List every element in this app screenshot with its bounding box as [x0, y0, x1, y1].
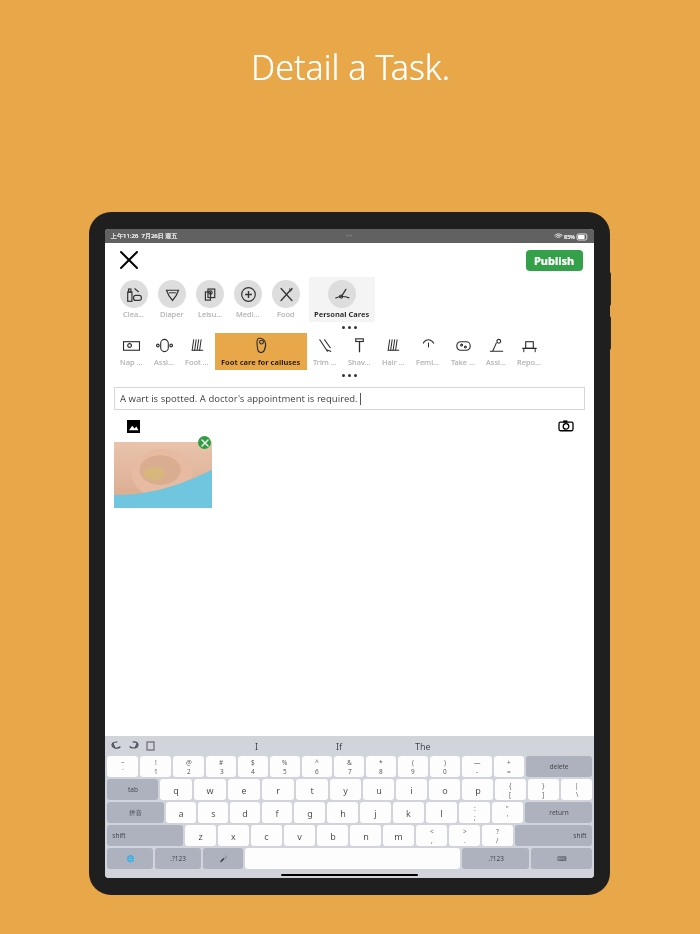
button[interactable]: b — [317, 825, 348, 846]
button[interactable]: : — [459, 802, 490, 823]
button[interactable]: Assi… — [149, 333, 179, 370]
button[interactable]: d — [230, 802, 260, 823]
button[interactable]: + — [494, 756, 524, 777]
button[interactable]: The — [381, 740, 464, 752]
button[interactable]: v — [284, 825, 315, 846]
button[interactable]: $ — [238, 756, 268, 777]
staticText: 4 — [251, 767, 255, 776]
staticText: l — [440, 807, 443, 819]
button[interactable]: Nap … — [115, 333, 148, 370]
staticText: m — [394, 830, 403, 842]
button[interactable]: Foot care for calluses — [215, 333, 307, 370]
staticText: Medi… — [236, 309, 260, 319]
button[interactable]: k — [393, 802, 424, 823]
button[interactable]: Personal Cares — [309, 277, 375, 322]
button[interactable]: Paste — [145, 740, 156, 751]
button[interactable]: % — [270, 756, 300, 777]
button[interactable]: ~ — [107, 756, 138, 777]
button[interactable]: shift — [515, 825, 592, 846]
button[interactable]: Remove photo — [198, 436, 211, 449]
button[interactable]: ^ — [302, 756, 332, 777]
button[interactable]: y — [330, 779, 361, 800]
button[interactable]: ! — [140, 756, 171, 777]
staticText: Personal Cares — [314, 309, 370, 319]
button[interactable]: Trim … — [308, 333, 342, 370]
button[interactable]: c — [251, 825, 282, 846]
button[interactable]: Take … — [446, 333, 480, 370]
button[interactable]: 🎤 — [203, 848, 243, 869]
staticText: 6 — [315, 767, 319, 776]
button[interactable]: & — [334, 756, 364, 777]
staticText: 上午11:26 7月26日 週五 — [111, 232, 178, 240]
staticText: o — [442, 784, 448, 796]
button[interactable]: ) — [430, 756, 460, 777]
button[interactable]: m — [383, 825, 414, 846]
button[interactable]: s — [198, 802, 228, 823]
button[interactable]: w — [194, 779, 226, 800]
button[interactable]: I — [215, 740, 298, 752]
button[interactable]: .?123 — [462, 848, 529, 869]
button[interactable]: Undo — [111, 740, 122, 751]
button[interactable]: e — [228, 779, 260, 800]
button[interactable]: .?123 — [155, 848, 201, 869]
button[interactable]: * — [366, 756, 396, 777]
button[interactable]: h — [327, 802, 358, 823]
button[interactable]: f — [262, 802, 292, 823]
button[interactable]: Femi… — [411, 333, 445, 370]
button[interactable]: } — [528, 779, 559, 800]
button[interactable]: x — [218, 825, 249, 846]
button[interactable]: Choose photo — [124, 417, 142, 435]
button[interactable]: Food — [268, 277, 304, 322]
button[interactable]: # — [206, 756, 236, 777]
button[interactable]: Take photo — [557, 417, 575, 435]
button[interactable]: Redo — [128, 740, 139, 751]
button[interactable]: 🌐 — [107, 848, 153, 869]
button[interactable]: > — [449, 825, 480, 846]
button[interactable]: — — [462, 756, 492, 777]
button[interactable]: If — [298, 740, 381, 752]
button[interactable]: Shav… — [343, 333, 376, 370]
button[interactable]: return — [525, 802, 592, 823]
button[interactable]: j — [360, 802, 391, 823]
button[interactable]: Clea… — [116, 277, 152, 322]
button[interactable]: i — [396, 779, 427, 800]
button[interactable]: a — [166, 802, 196, 823]
button[interactable]: o — [429, 779, 460, 800]
button[interactable]: n — [350, 825, 381, 846]
button[interactable]: u — [363, 779, 394, 800]
button[interactable]: Leisu… — [192, 277, 228, 322]
staticText: \ — [576, 790, 579, 799]
button[interactable]: Hair … — [377, 333, 410, 370]
staticText: delete — [549, 762, 569, 771]
button[interactable]: delete — [526, 756, 592, 777]
button[interactable]: < — [416, 825, 447, 846]
button[interactable]: g — [294, 802, 325, 823]
button[interactable]: Repo… — [512, 333, 546, 370]
button[interactable]: ? — [482, 825, 513, 846]
button[interactable]: Publish — [526, 250, 583, 271]
button[interactable]: tab — [107, 779, 158, 800]
button[interactable]: 拼音 — [107, 802, 164, 823]
button[interactable]: @ — [173, 756, 204, 777]
button[interactable]: Medi… — [230, 277, 266, 322]
button[interactable]: q — [160, 779, 192, 800]
button[interactable]: Close — [117, 248, 141, 272]
button[interactable]: Foot … — [180, 333, 214, 370]
button[interactable]: Diaper — [154, 277, 190, 322]
button[interactable]: t — [296, 779, 328, 800]
button[interactable] — [114, 442, 212, 508]
button[interactable]: Assi… — [481, 333, 511, 370]
button[interactable]: ( — [398, 756, 428, 777]
button[interactable]: " — [492, 802, 523, 823]
staticText: ) — [444, 758, 446, 767]
button[interactable]: r — [262, 779, 294, 800]
button[interactable]: | — [561, 779, 592, 800]
button[interactable]: A wart is spotted. A doctor's appointmen… — [114, 387, 585, 410]
button[interactable]: p — [462, 779, 493, 800]
button[interactable]: shift — [107, 825, 183, 846]
button[interactable]: { — [495, 779, 526, 800]
button[interactable]: ⌨ — [531, 848, 592, 869]
button[interactable]: z — [185, 825, 216, 846]
button[interactable]: l — [426, 802, 457, 823]
